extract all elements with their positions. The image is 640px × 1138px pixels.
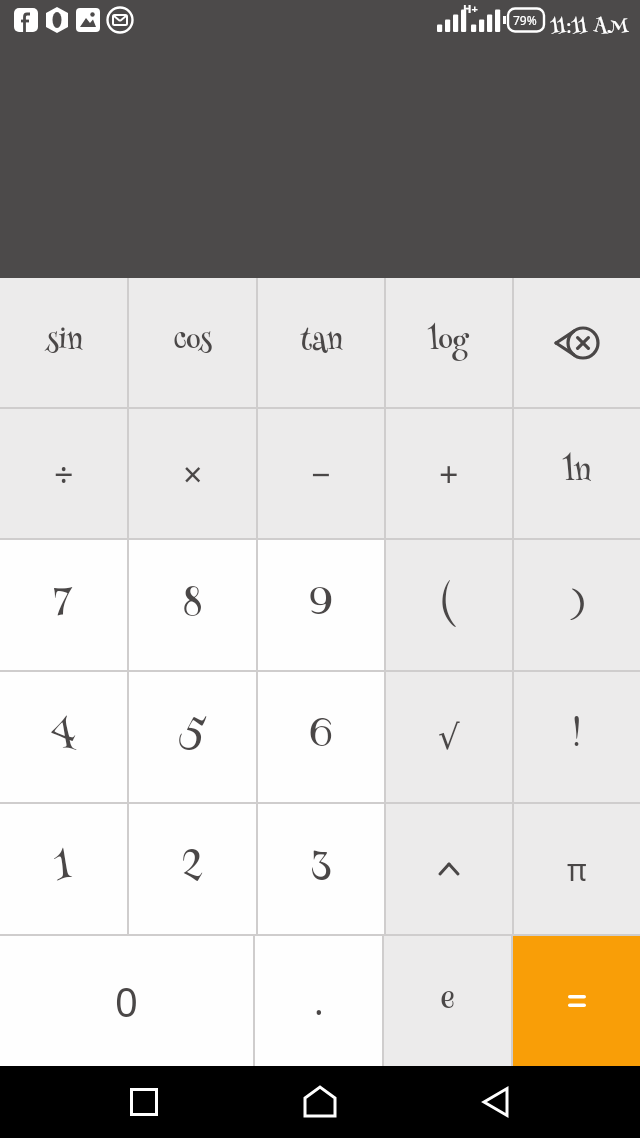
staticText: 6: [310, 705, 332, 769]
staticText: H+: [463, 1, 478, 16]
staticText: 11:11 AM: [550, 10, 629, 44]
staticText: log: [429, 318, 469, 368]
staticText: 2: [183, 837, 203, 901]
staticText: ÷: [54, 451, 74, 497]
staticText: tan: [300, 318, 343, 368]
button[interactable]: !: [514, 672, 640, 802]
button[interactable]: (: [386, 540, 512, 670]
staticText: 79%: [513, 12, 537, 28]
staticText: sin: [45, 318, 83, 368]
button[interactable]: log: [386, 278, 512, 407]
button[interactable]: .: [255, 936, 382, 1066]
staticText: 3: [312, 837, 331, 901]
staticText: +: [439, 451, 459, 497]
staticText: ln: [564, 447, 591, 500]
staticText: −: [311, 451, 331, 497]
button[interactable]: ×: [129, 409, 256, 538]
staticText: 4: [51, 705, 77, 769]
button[interactable]: [112, 1070, 176, 1134]
button[interactable]: √: [386, 672, 512, 802]
button[interactable]: [386, 804, 512, 934]
staticText: π: [567, 849, 587, 890]
button[interactable]: sin: [0, 278, 127, 407]
staticText: 8: [184, 573, 202, 637]
staticText: 5: [179, 705, 207, 769]
button[interactable]: cos: [129, 278, 256, 407]
staticText: ): [570, 577, 585, 634]
button[interactable]: 2: [129, 804, 256, 934]
staticText: ×: [183, 451, 203, 497]
button[interactable]: e: [384, 936, 511, 1066]
button[interactable]: +: [386, 409, 512, 538]
button[interactable]: [288, 1070, 352, 1134]
button[interactable]: 4: [0, 672, 127, 802]
button[interactable]: [514, 278, 640, 407]
staticText: √: [438, 717, 460, 757]
button[interactable]: −: [258, 409, 384, 538]
button[interactable]: ): [514, 540, 640, 670]
staticText: !: [573, 711, 581, 764]
button[interactable]: 7: [0, 540, 127, 670]
button[interactable]: ln: [514, 409, 640, 538]
button[interactable]: 6: [258, 672, 384, 802]
staticText: 0: [115, 974, 138, 1028]
button[interactable]: [464, 1070, 528, 1134]
staticText: .: [314, 977, 324, 1026]
button[interactable]: [513, 936, 640, 1066]
staticText: 9: [310, 573, 332, 637]
button[interactable]: ÷: [0, 409, 127, 538]
button[interactable]: 8: [129, 540, 256, 670]
staticText: (: [442, 577, 456, 634]
button[interactable]: 3: [258, 804, 384, 934]
button[interactable]: 9: [258, 540, 384, 670]
staticText: 7: [54, 573, 73, 637]
button[interactable]: 0: [0, 936, 253, 1066]
button[interactable]: 1: [0, 804, 127, 934]
staticText: 1: [54, 837, 73, 901]
staticText: cos: [174, 318, 212, 368]
button[interactable]: 5: [129, 672, 256, 802]
button[interactable]: tan: [258, 278, 384, 407]
staticText: e: [441, 975, 455, 1028]
button[interactable]: π: [514, 804, 640, 934]
